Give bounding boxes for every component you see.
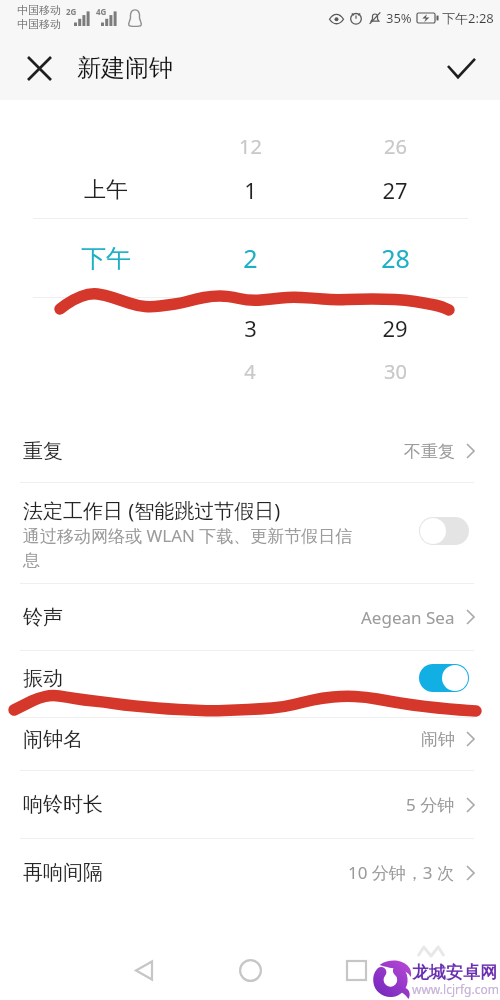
button[interactable]: Close [11,36,67,100]
staticText: 4G [96,6,107,17]
staticText: 28 [381,241,410,275]
staticText: 4 [244,358,256,385]
button[interactable]: 27 [335,168,455,212]
staticText: 12 [239,133,262,160]
staticText: 不重复 [404,441,455,462]
button[interactable]: 3 [190,306,310,350]
button[interactable]: 再响间隔 [0,839,500,906]
staticText: 响铃时长 [23,792,103,817]
button[interactable]: Home [224,944,276,996]
staticText: 下午 [81,243,131,274]
staticText: Aegean Sea [361,606,455,629]
staticText: 5 分钟 [406,793,455,816]
button[interactable]: 铃声 [0,584,500,650]
button[interactable]: 响铃时长 [0,771,500,838]
staticText: 10 分钟，3 次 [348,861,455,884]
staticText: 29 [382,313,408,343]
button[interactable]: 下午 [46,236,166,280]
staticText: 26 [384,133,407,160]
staticText: 法定工作日 (智能跳过节假日) [23,497,281,524]
staticText: 2G [66,6,77,17]
staticText: 闹钟 [421,729,455,750]
staticText: 下午2:28 [442,9,494,27]
staticText: 2 [243,241,258,275]
staticText: 3 [244,313,257,343]
button[interactable]: 1 [190,168,310,212]
button[interactable]: Back [118,944,170,996]
staticText: 1 [244,175,257,205]
staticText: www.lcjrfg.com [412,981,499,997]
button[interactable]: 闹钟名 [0,718,500,760]
staticText: 35% [386,9,412,27]
staticText: 30 [384,358,407,385]
button[interactable]: 上午 [46,168,166,212]
staticText: 再响间隔 [23,860,103,885]
staticText: 中国移动 [17,17,61,31]
button[interactable]: Holiday sync off [419,517,469,545]
button[interactable]: 振动 [0,651,500,705]
button[interactable]: 4 [190,349,310,393]
staticText: 27 [382,175,408,205]
staticText: 重复 [23,439,63,464]
button[interactable]: 30 [335,349,455,393]
staticText: 龙城安卓网 [412,962,497,983]
staticText: 中国移动 [17,3,61,17]
button[interactable]: 重复 [0,420,500,482]
button[interactable]: Recents [330,944,382,996]
button[interactable]: Confirm [433,36,489,100]
staticText: 振动 [23,666,63,691]
staticText: 铃声 [23,605,63,630]
staticText: 新建闹钟 [77,53,173,83]
staticText: 闹钟名 [23,727,83,752]
button[interactable]: 26 [335,124,455,168]
staticText: 上午 [84,176,128,204]
staticText: 通过移动网络或 WLAN 下载、更新节假日信 息 [23,524,353,571]
button[interactable]: Vibration on [419,664,469,692]
button[interactable]: 2 [190,236,310,280]
button[interactable]: 28 [335,236,455,280]
button[interactable]: 法定工作日 (智能跳过节假日) [0,483,500,583]
button[interactable]: 12 [190,124,310,168]
button[interactable]: 29 [335,306,455,350]
